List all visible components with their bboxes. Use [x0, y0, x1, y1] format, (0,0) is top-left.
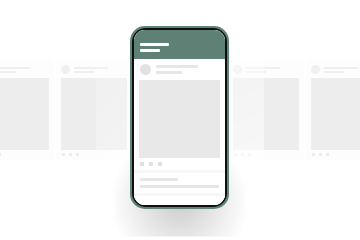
button[interactable]: Action — [140, 162, 144, 166]
button[interactable] — [0, 61, 53, 159]
button[interactable] — [134, 30, 225, 59]
button[interactable] — [229, 61, 303, 159]
button[interactable] — [134, 178, 225, 188]
button[interactable]: Action — [149, 162, 153, 166]
button[interactable]: Action — [158, 162, 162, 166]
button[interactable] — [307, 61, 360, 159]
button[interactable]: Profile photo — [134, 59, 225, 170]
button[interactable] — [57, 61, 131, 159]
button[interactable]: Profile photo — [134, 196, 225, 205]
button[interactable] — [135, 61, 209, 159]
button[interactable]: Profile photo — [140, 64, 151, 75]
